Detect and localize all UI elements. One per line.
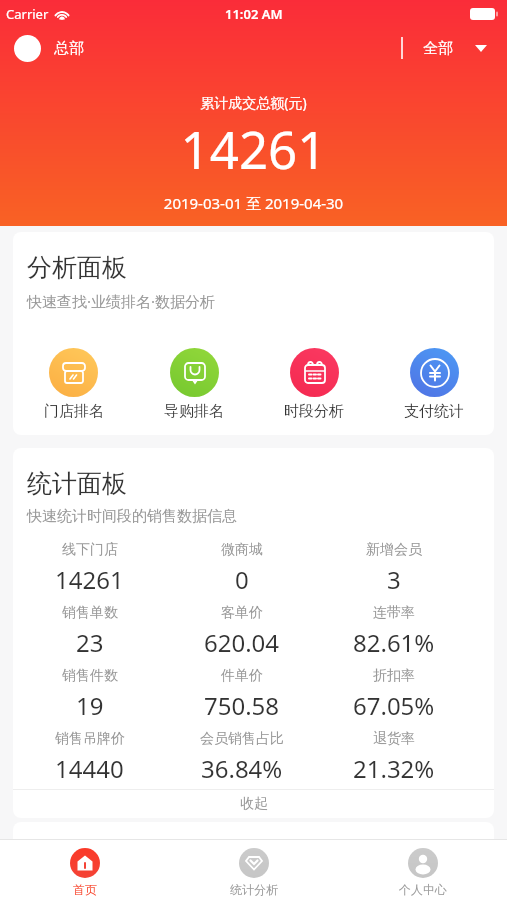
- staticText: 门店排名: [44, 402, 104, 421]
- staticText: 统计分析: [230, 882, 278, 897]
- button[interactable]: 首页: [0, 840, 169, 900]
- staticText: 件单价: [221, 667, 263, 685]
- staticText: 14261: [55, 563, 124, 596]
- staticText: 客单价: [221, 604, 263, 622]
- staticText: 19: [76, 689, 104, 722]
- staticText: 累计成交总额(元): [0, 93, 507, 112]
- staticText: 导购排名: [164, 402, 224, 421]
- staticText: 分析面板: [27, 252, 127, 283]
- staticText: Carrier: [6, 5, 49, 23]
- button[interactable]: 门店排名: [13, 348, 134, 421]
- staticText: 连带率: [373, 604, 415, 622]
- staticText: 21.32%: [353, 752, 435, 785]
- staticText: 67.05%: [353, 689, 435, 722]
- button[interactable]: 个人中心: [338, 840, 507, 900]
- staticText: 折扣率: [373, 667, 415, 685]
- staticText: 首页: [73, 882, 97, 897]
- button[interactable]: 导购排名: [134, 348, 254, 421]
- staticText: 新增会员: [366, 541, 422, 559]
- staticText: 3: [387, 563, 401, 596]
- staticText: 个人中心: [399, 882, 447, 897]
- button[interactable]: 全部: [403, 35, 487, 62]
- staticText: 收起: [240, 795, 268, 813]
- button[interactable]: 时段分析: [254, 348, 374, 421]
- staticText: 全部: [423, 39, 453, 58]
- staticText: 快速查找·业绩排名·数据分析: [27, 291, 216, 311]
- staticText: 14261: [0, 114, 507, 183]
- staticText: 销售吊牌价: [55, 730, 125, 748]
- button[interactable]: 统计分析: [169, 840, 338, 900]
- staticText: 14440: [55, 752, 124, 785]
- staticText: 支付统计: [404, 402, 464, 421]
- staticText: 750.58: [204, 689, 280, 722]
- staticText: 销售单数: [62, 604, 118, 622]
- staticText: 0: [235, 563, 249, 596]
- staticText: 线下门店: [62, 541, 118, 559]
- staticText: 销售件数: [62, 667, 118, 685]
- staticText: 快速统计时间段的销售数据信息: [27, 507, 237, 526]
- staticText: 11:02 AM: [225, 5, 283, 23]
- staticText: 2019-03-01 至 2019-04-30: [0, 193, 507, 213]
- staticText: 36.84%: [201, 752, 283, 785]
- button[interactable]: 收起: [13, 790, 494, 818]
- button[interactable]: 支付统计: [374, 348, 494, 421]
- staticText: 会员销售占比: [200, 730, 284, 748]
- staticText: 微商城: [221, 541, 263, 559]
- staticText: 总部: [54, 39, 84, 58]
- staticText: 统计面板: [27, 468, 127, 499]
- staticText: 退货率: [373, 730, 415, 748]
- staticText: 时段分析: [284, 402, 344, 421]
- button[interactable]: [14, 35, 41, 62]
- staticText: 620.04: [204, 626, 280, 659]
- staticText: 82.61%: [353, 626, 435, 659]
- staticText: 23: [76, 626, 104, 659]
